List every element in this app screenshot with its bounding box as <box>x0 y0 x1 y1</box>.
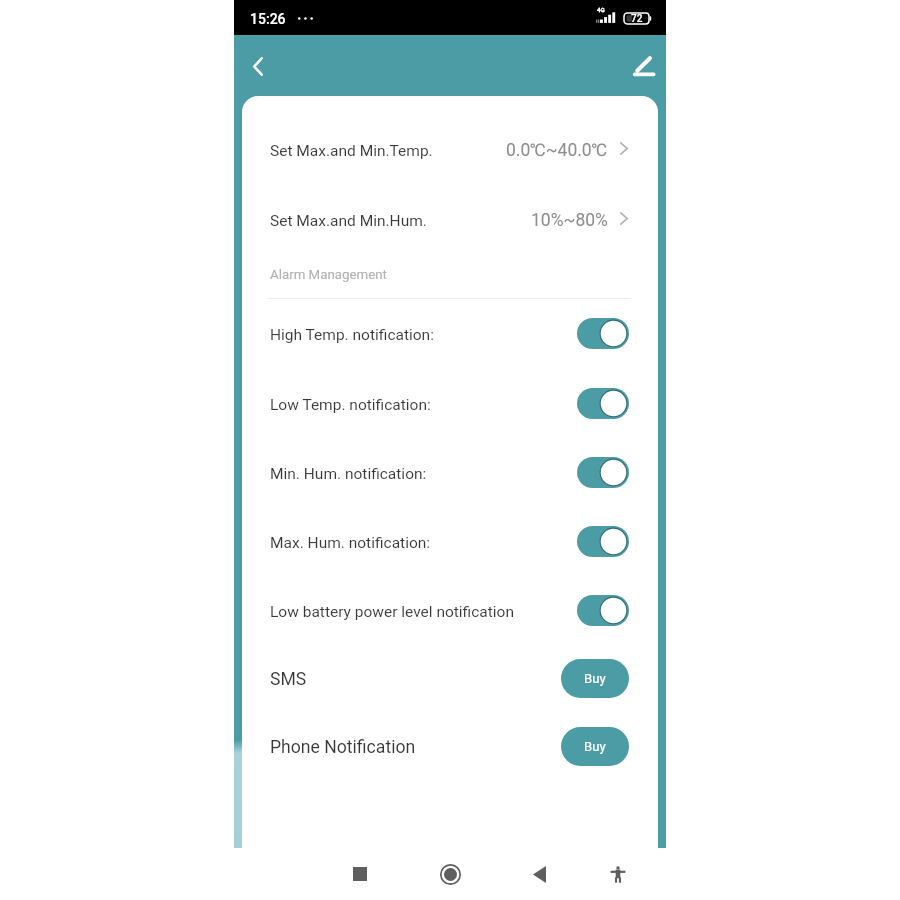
staticText: 4G <box>597 6 605 13</box>
button[interactable]: Low Temp. notification: <box>270 375 628 435</box>
button[interactable]: Set Max.and Min.Hum. <box>270 186 628 255</box>
staticText: Set Max.and Min.Temp. <box>270 142 433 160</box>
button[interactable]: Set Max.and Min.Temp. <box>270 116 628 185</box>
button[interactable]: Buy <box>561 727 629 766</box>
staticText: Low battery power level notification <box>270 603 514 621</box>
staticText: 0.0℃~40.0℃ <box>506 140 608 161</box>
staticText: Low Temp. notification: <box>270 396 431 414</box>
button[interactable]: Back <box>517 852 561 896</box>
button[interactable]: Back <box>235 36 281 90</box>
button[interactable]: Recents <box>338 852 382 896</box>
button[interactable]: Max. Hum. notification: <box>270 513 628 573</box>
button[interactable]: Edit <box>620 36 666 90</box>
staticText: Min. Hum. notification: <box>270 465 427 483</box>
button[interactable]: SMS <box>270 649 628 709</box>
button[interactable]: Accessibility <box>596 852 640 896</box>
staticText: SMS <box>270 669 307 690</box>
staticText: High Temp. notification: <box>270 326 434 344</box>
staticText: 15:26 <box>250 11 286 27</box>
button[interactable]: Min. Hum. notification: <box>270 444 628 504</box>
button[interactable]: Low battery power level notification <box>270 582 628 642</box>
staticText: 72 <box>631 13 643 24</box>
staticText: Buy <box>584 671 606 686</box>
button[interactable]: High Temp. notification: <box>270 305 628 365</box>
button[interactable]: Buy <box>561 659 629 698</box>
staticText: Set Max.and Min.Hum. <box>270 212 427 230</box>
button[interactable]: Phone Notification <box>270 717 628 777</box>
staticText: Buy <box>584 739 606 754</box>
button[interactable]: Home <box>428 852 472 896</box>
staticText: 10%~80% <box>531 210 608 231</box>
staticText: Max. Hum. notification: <box>270 534 431 552</box>
staticText: Phone Notification <box>270 737 416 758</box>
staticText: Alarm Management <box>270 267 387 283</box>
